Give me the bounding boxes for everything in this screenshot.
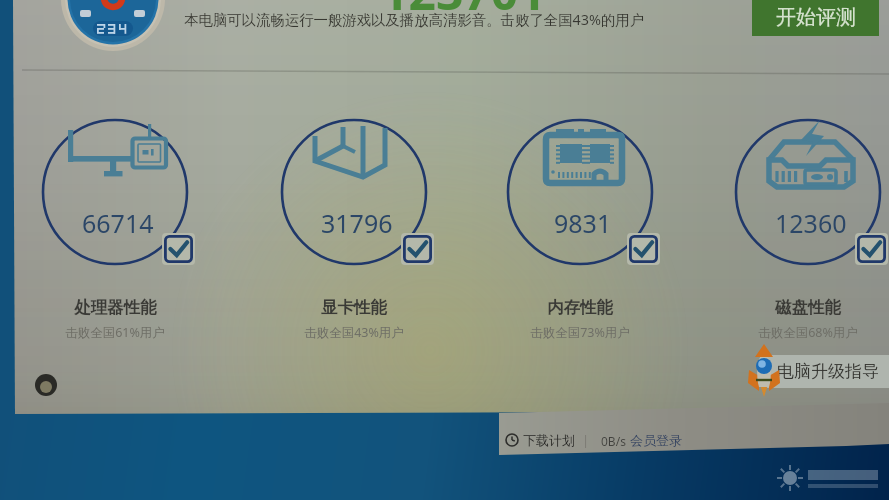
staticText: 本电脑可以流畅运行一般游戏以及播放高清影音。击败了全国43%的用户 <box>184 10 645 30</box>
staticText: 击败全国68%用户 <box>758 324 858 341</box>
staticText: 开始评测 <box>776 5 856 30</box>
staticText: 下载计划 <box>523 432 575 448</box>
button[interactable]: 处理器性能 <box>41 118 189 266</box>
button[interactable]: 下载计划 <box>523 432 575 448</box>
staticText: 电脑升级指导 <box>777 361 879 382</box>
staticText: 内存性能 <box>547 297 613 318</box>
button[interactable]: Completed <box>857 235 886 263</box>
staticText: 12360 <box>775 206 847 240</box>
staticText: 66714 <box>82 206 154 240</box>
staticText: 击败全国43%用户 <box>304 324 404 341</box>
staticText: | <box>582 431 590 449</box>
button[interactable]: Completed <box>164 235 193 263</box>
button[interactable]: Completed <box>629 235 658 263</box>
button[interactable]: Download plan <box>505 433 519 447</box>
staticText: 会员登录 <box>630 432 682 448</box>
staticText: 31796 <box>321 206 393 240</box>
staticText: 显卡性能 <box>321 297 387 318</box>
staticText: 击败全国61%用户 <box>65 324 165 341</box>
staticText: 处理器性能 <box>74 297 157 318</box>
button[interactable]: 会员登录 <box>630 432 682 448</box>
button[interactable]: 内存性能 <box>506 118 654 266</box>
button[interactable]: Completed <box>403 235 432 263</box>
staticText: 磁盘性能 <box>775 297 841 318</box>
staticText: 123701 <box>381 0 546 24</box>
button[interactable]: 显卡性能 <box>280 118 428 266</box>
button[interactable]: 电脑升级指导 <box>761 355 889 388</box>
button[interactable]: 磁盘性能 <box>734 118 882 266</box>
staticText: 9831 <box>554 206 612 240</box>
staticText: 击败全国73%用户 <box>530 324 630 341</box>
staticText: 0B/s <box>601 433 626 449</box>
button[interactable]: 开始评测 <box>752 0 879 36</box>
